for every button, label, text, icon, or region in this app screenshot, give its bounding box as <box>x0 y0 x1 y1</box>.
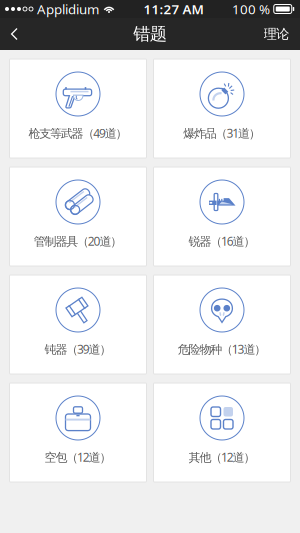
staticText: 错题 <box>133 23 167 45</box>
staticText: 危险物种（13道） <box>178 341 266 357</box>
staticText: 管制器具（20道） <box>34 233 122 249</box>
staticText: 锐器（16道） <box>189 233 255 249</box>
button[interactable]: 管制器具（20道） <box>9 167 146 266</box>
staticText: 100 % <box>232 0 270 18</box>
button[interactable]: 空包（12道） <box>9 383 146 482</box>
staticText: Applidium <box>37 0 99 18</box>
button[interactable]: Back <box>0 18 33 49</box>
staticText: 空包（12道） <box>45 449 111 465</box>
staticText: 枪支等武器（49道） <box>28 125 128 141</box>
staticText: 11:27 AM <box>143 0 203 18</box>
button[interactable]: 锐器（16道） <box>153 167 290 266</box>
staticText: 钝器（39道） <box>45 341 111 357</box>
button[interactable]: 危险物种（13道） <box>153 275 290 374</box>
staticText: 爆炸品（31道） <box>183 125 261 141</box>
button[interactable]: 枪支等武器（49道） <box>9 59 146 158</box>
button[interactable]: 钝器（39道） <box>9 275 146 374</box>
button[interactable]: 理论 <box>251 18 300 50</box>
staticText: 其他（12道） <box>189 449 255 465</box>
staticText: 理论 <box>263 26 289 42</box>
button[interactable]: 其他（12道） <box>153 383 290 482</box>
button[interactable]: 爆炸品（31道） <box>153 59 290 158</box>
